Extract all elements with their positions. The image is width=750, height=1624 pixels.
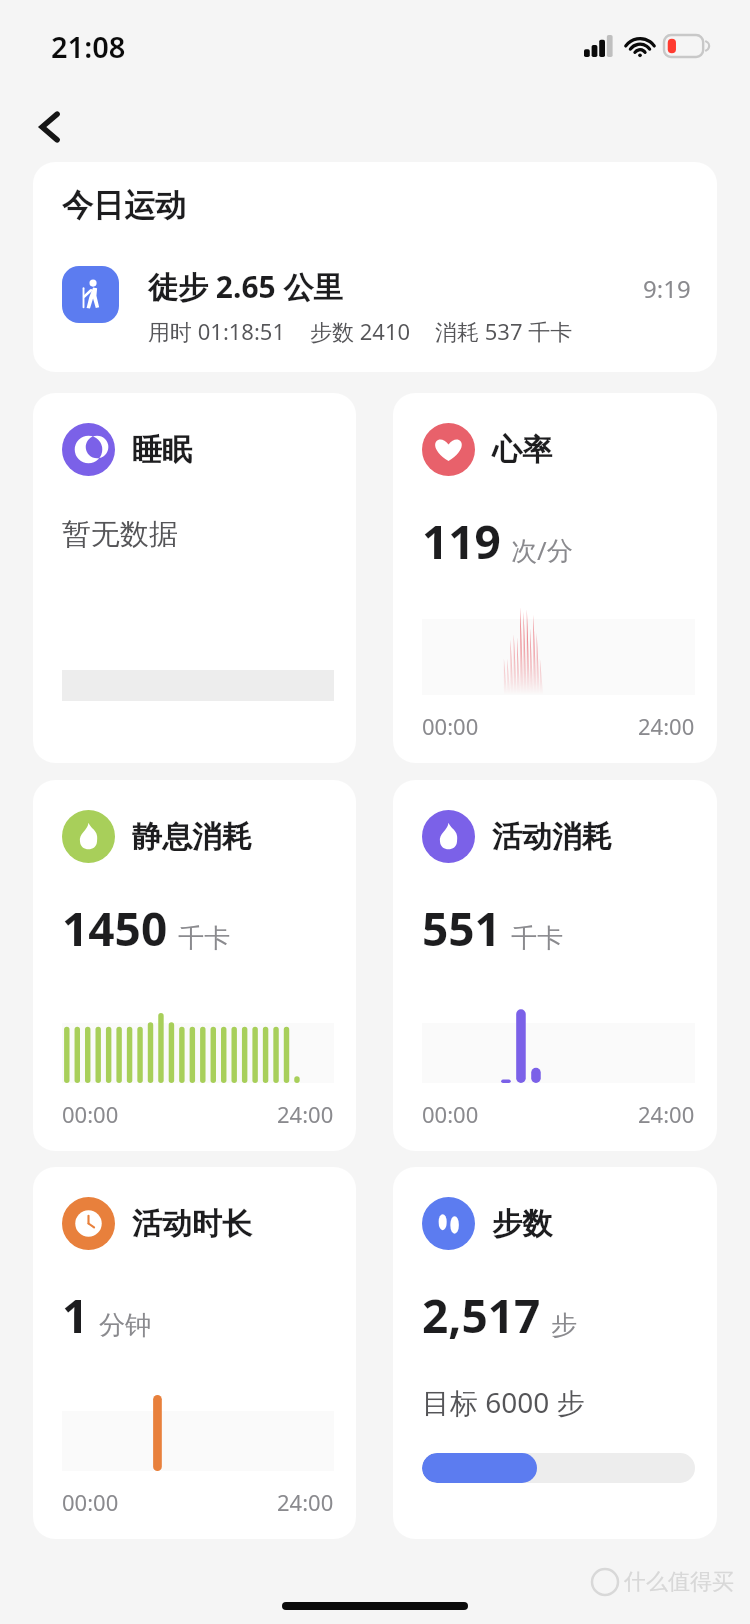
staticText: 今日运动 xyxy=(62,186,186,225)
staticText: 什么值得买 xyxy=(624,1568,734,1596)
staticText: 消耗 537 千卡 xyxy=(435,316,573,346)
staticText: 119 xyxy=(422,510,501,573)
button[interactable]: 心率 xyxy=(393,393,717,763)
staticText: 步数 xyxy=(492,1205,552,1243)
staticText: 00:00 xyxy=(422,1099,479,1129)
staticText: 9:19 xyxy=(643,272,691,305)
staticText: 551 xyxy=(422,897,501,960)
staticText: 睡眠 xyxy=(132,431,192,469)
staticText: 24:00 xyxy=(638,1099,695,1129)
staticText: 21:08 xyxy=(51,27,126,66)
staticText: 2,517 xyxy=(422,1284,541,1347)
staticText: 00:00 xyxy=(422,711,479,741)
staticText: 徒步 2.65 公里 xyxy=(148,266,344,307)
staticText: 千卡 xyxy=(511,922,563,955)
staticText: 心率 xyxy=(492,431,552,469)
button[interactable]: 步数 xyxy=(393,1167,717,1539)
button[interactable]: 睡眠 xyxy=(33,393,356,763)
staticText: 次/分 xyxy=(511,532,573,568)
staticText: 用时 01:18:51 xyxy=(148,316,286,346)
button[interactable]: 静息消耗 xyxy=(33,780,356,1151)
staticText: 步 xyxy=(551,1309,577,1342)
staticText: 24:00 xyxy=(277,1099,334,1129)
staticText: 活动消耗 xyxy=(492,818,612,856)
staticText: 静息消耗 xyxy=(132,818,252,856)
staticText: 1450 xyxy=(62,897,168,960)
staticText: 活动时长 xyxy=(132,1205,252,1243)
staticText: 目标 6000 步 xyxy=(422,1383,585,1421)
staticText: 步数 2410 xyxy=(310,316,411,346)
staticText: 1 xyxy=(62,1284,89,1347)
button[interactable]: 今日运动 xyxy=(33,162,717,372)
staticText: 千卡 xyxy=(178,922,230,955)
staticText: 24:00 xyxy=(638,711,695,741)
button[interactable]: 活动消耗 xyxy=(393,780,717,1151)
staticText: 24:00 xyxy=(277,1487,334,1517)
staticText: 00:00 xyxy=(62,1099,119,1129)
button[interactable]: Back xyxy=(22,98,80,156)
staticText: 分钟 xyxy=(99,1309,151,1342)
staticText: 00:00 xyxy=(62,1487,119,1517)
button[interactable]: 活动时长 xyxy=(33,1167,356,1539)
staticText: 暂无数据 xyxy=(62,516,178,553)
